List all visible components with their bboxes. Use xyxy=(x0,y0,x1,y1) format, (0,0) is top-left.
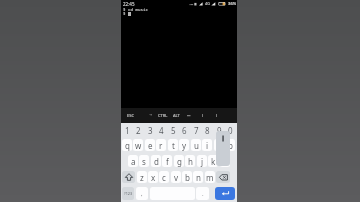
button[interactable]: 6 xyxy=(179,124,189,136)
button[interactable]: j xyxy=(197,155,207,167)
staticText: c xyxy=(162,172,166,183)
button[interactable]: n xyxy=(193,171,203,183)
button[interactable]: 2 xyxy=(133,124,143,136)
staticText: m xyxy=(206,172,214,183)
button[interactable]: ESC xyxy=(127,113,134,118)
staticText: 5 xyxy=(171,125,176,136)
button[interactable]: y xyxy=(179,139,189,151)
staticText: z xyxy=(140,172,144,183)
button[interactable]: i xyxy=(202,139,212,151)
staticText: r xyxy=(159,140,163,151)
button[interactable]: h xyxy=(185,155,195,167)
staticText: n xyxy=(196,172,201,183)
button[interactable]: t xyxy=(168,139,178,151)
staticText: 36% xyxy=(228,1,237,7)
staticText: e xyxy=(148,140,153,151)
button[interactable]: d xyxy=(151,155,161,167)
staticText: 3 xyxy=(148,125,153,136)
staticText: 7 xyxy=(194,125,199,136)
staticText: v xyxy=(174,172,179,183)
button[interactable]: a xyxy=(128,155,138,167)
button[interactable]: o xyxy=(214,139,224,151)
staticText: y xyxy=(182,140,187,151)
button[interactable]: 3 xyxy=(145,124,155,136)
button[interactable]: ⇥ xyxy=(149,113,153,117)
staticText: k xyxy=(211,156,216,167)
button[interactable]: z xyxy=(137,171,147,183)
staticText: 0 xyxy=(228,125,233,136)
staticText: ALT xyxy=(173,113,180,118)
staticText: 1 xyxy=(125,125,130,136)
button[interactable]: 5 xyxy=(168,124,178,136)
staticText: 4 xyxy=(159,125,164,136)
staticText: 6 xyxy=(182,125,187,136)
button[interactable]: 4 xyxy=(156,124,166,136)
button[interactable]: . xyxy=(196,187,209,200)
button[interactable]: 9 xyxy=(214,124,224,136)
button[interactable]: 1 xyxy=(122,124,132,136)
staticText: q xyxy=(125,140,130,151)
staticText: a xyxy=(131,156,136,167)
button[interactable]: e xyxy=(145,139,155,151)
staticText: l xyxy=(224,156,227,167)
staticText: ESC xyxy=(127,113,134,118)
button[interactable]: ALT xyxy=(173,113,180,118)
button[interactable]: x xyxy=(148,171,158,183)
staticText: 9 xyxy=(217,125,222,136)
button[interactable] xyxy=(122,171,135,183)
button[interactable]: u xyxy=(191,139,201,151)
button[interactable]: ?123 xyxy=(122,187,134,200)
staticText: j xyxy=(201,156,204,167)
button[interactable]: s xyxy=(139,155,149,167)
button[interactable]: 0 xyxy=(225,124,235,136)
button[interactable]: g xyxy=(174,155,184,167)
staticText: u xyxy=(194,140,199,151)
button[interactable]: w xyxy=(133,139,143,151)
staticText: p xyxy=(228,140,233,151)
staticText: 8 xyxy=(205,125,210,136)
button[interactable]: m xyxy=(205,171,215,183)
button[interactable] xyxy=(216,171,230,183)
staticText: f xyxy=(166,156,169,167)
button[interactable]: k xyxy=(208,155,218,167)
staticText: w xyxy=(135,140,142,151)
button[interactable]: q xyxy=(122,139,132,151)
staticText: ?123 xyxy=(124,191,133,196)
button[interactable]: c xyxy=(159,171,169,183)
button[interactable]: p xyxy=(225,139,235,151)
staticText: g xyxy=(177,156,182,167)
staticText: , xyxy=(141,190,143,198)
staticText: 22:45 xyxy=(123,1,135,7)
staticText: 2 xyxy=(136,125,141,136)
staticText: 4G xyxy=(205,1,210,6)
staticText: x xyxy=(151,172,156,183)
button[interactable]: , xyxy=(136,187,148,200)
button[interactable]: v xyxy=(171,171,181,183)
button[interactable]: 8 xyxy=(202,124,212,136)
button[interactable]: 7 xyxy=(191,124,201,136)
staticText: CTRL xyxy=(158,113,168,118)
staticText: d xyxy=(154,156,159,167)
button[interactable]: r xyxy=(156,139,166,151)
button[interactable]: CTRL xyxy=(158,113,168,118)
button[interactable]: l xyxy=(220,155,230,167)
button[interactable] xyxy=(215,187,235,200)
staticText: i xyxy=(206,140,209,151)
staticText: $ cd music xyxy=(123,7,149,13)
staticText: s xyxy=(142,156,146,167)
staticText: ⇥ xyxy=(149,113,153,117)
staticText: b xyxy=(185,172,190,183)
staticText: h xyxy=(188,156,193,167)
staticText: t xyxy=(172,140,175,151)
button[interactable]: b xyxy=(182,171,192,183)
staticText: $ xyxy=(123,11,126,17)
staticText: . xyxy=(202,190,204,198)
button[interactable]: f xyxy=(162,155,172,167)
